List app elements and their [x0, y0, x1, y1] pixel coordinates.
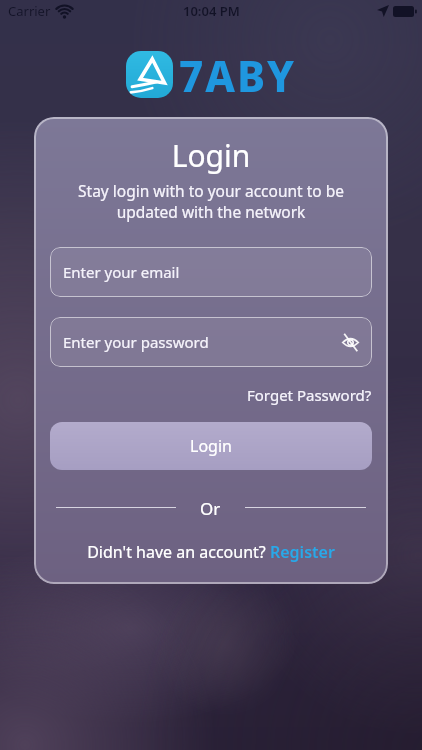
staticText: 7ABY — [179, 47, 297, 94]
staticText: Enter your password — [63, 332, 342, 352]
staticText: Login — [190, 435, 232, 457]
button[interactable]: Forget Password? — [247, 385, 372, 405]
staticText: Login — [50, 135, 372, 176]
button[interactable]: Enter your email — [50, 247, 372, 297]
staticText: Or — [200, 497, 221, 517]
staticText: Stay login with to your account to be up… — [50, 180, 372, 223]
staticText: Carrier — [8, 2, 51, 20]
button[interactable]: Didn't have an account? Register — [50, 541, 372, 563]
staticText: Enter your email — [63, 262, 359, 282]
button[interactable]: Enter your password — [50, 317, 372, 367]
button[interactable]: Login — [50, 422, 372, 470]
staticText: 10:04 PM — [183, 2, 240, 20]
